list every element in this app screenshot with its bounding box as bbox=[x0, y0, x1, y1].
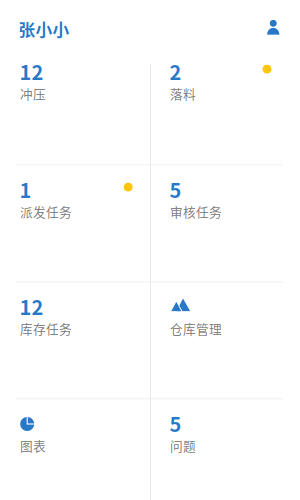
staticText: 1 bbox=[19, 175, 31, 204]
staticText: 张小小 bbox=[19, 17, 70, 41]
staticText: 12 bbox=[19, 292, 43, 321]
button[interactable]: 仓库管理 bbox=[150, 282, 300, 398]
staticText: 库存任务 bbox=[20, 319, 72, 338]
button[interactable]: 12 bbox=[0, 47, 150, 164]
button[interactable]: 张小小 bbox=[17, 11, 72, 47]
staticText: 冲压 bbox=[20, 84, 46, 103]
staticText: 派发任务 bbox=[20, 202, 72, 221]
staticText: 12 bbox=[19, 57, 43, 86]
button[interactable]: Profile bbox=[260, 12, 286, 43]
button[interactable]: 2 bbox=[150, 47, 300, 164]
staticText: 问题 bbox=[170, 436, 196, 455]
staticText: 审核任务 bbox=[170, 202, 222, 221]
staticText: 5 bbox=[169, 409, 181, 438]
button[interactable]: 5 bbox=[150, 399, 300, 450]
staticText: 图表 bbox=[20, 436, 46, 455]
staticText: 落料 bbox=[170, 84, 196, 103]
button[interactable]: 12 bbox=[0, 282, 150, 398]
button[interactable]: 1 bbox=[0, 165, 150, 281]
staticText: 5 bbox=[169, 175, 181, 204]
button[interactable]: 图表 bbox=[0, 399, 150, 450]
staticText: 仓库管理 bbox=[170, 319, 222, 338]
button[interactable]: 5 bbox=[150, 165, 300, 281]
staticText: 2 bbox=[169, 57, 181, 86]
